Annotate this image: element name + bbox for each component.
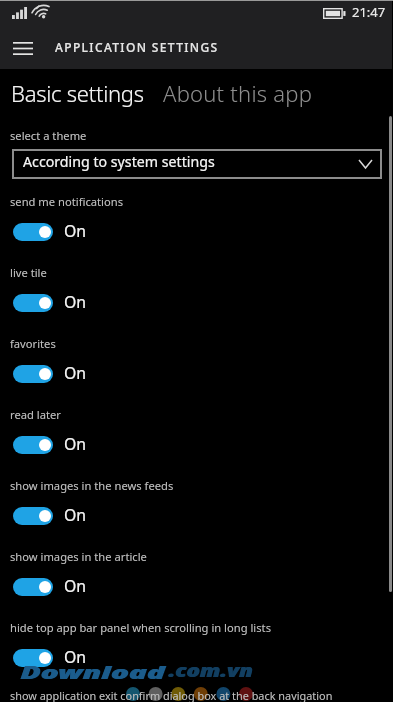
staticText: On	[64, 291, 87, 313]
staticText: On	[64, 646, 87, 668]
staticText: Download	[20, 661, 165, 684]
staticText: On	[64, 220, 87, 242]
staticText: show images in the article	[10, 549, 147, 564]
staticText: favorites	[10, 336, 56, 351]
staticText: send me notifications	[10, 194, 124, 209]
staticText: read later	[10, 407, 61, 422]
button[interactable]	[13, 436, 53, 454]
staticText: select a theme	[10, 128, 87, 143]
staticText: 21:47	[352, 3, 386, 21]
staticText: .com.vn	[169, 659, 253, 682]
button[interactable]: Basic settings	[11, 78, 144, 108]
staticText: live tile	[10, 265, 47, 280]
button[interactable]	[13, 294, 53, 312]
staticText: On	[64, 575, 87, 597]
button[interactable]	[13, 223, 53, 241]
staticText: show application exit confirm dialog box…	[10, 688, 333, 702]
button[interactable]	[13, 365, 53, 383]
staticText: APPLICATION SETTINGS	[55, 39, 219, 55]
staticText: According to system settings	[23, 152, 215, 171]
staticText: On	[64, 362, 87, 384]
button[interactable]	[13, 578, 53, 596]
staticText: Download	[21, 661, 166, 684]
staticText: On	[64, 504, 87, 526]
button[interactable]: According to system settings	[12, 149, 382, 179]
button[interactable]: About this app	[163, 78, 313, 108]
button[interactable]	[13, 507, 53, 525]
button[interactable]	[13, 649, 53, 667]
staticText: hide top app bar panel when scrolling in…	[10, 620, 271, 635]
staticText: show images in the news feeds	[10, 478, 174, 493]
staticText: .com.vn	[168, 659, 252, 682]
staticText: .com.vn	[169, 659, 253, 682]
button[interactable]: Menu	[5, 35, 41, 61]
staticText: Download	[20, 661, 165, 684]
staticText: On	[64, 433, 87, 455]
